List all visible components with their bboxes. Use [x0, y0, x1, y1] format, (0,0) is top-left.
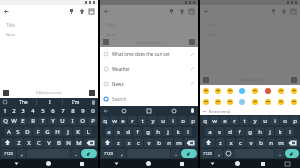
button[interactable] [261, 96, 274, 107]
button[interactable] [200, 96, 212, 107]
button[interactable]: r [230, 116, 239, 125]
button[interactable]: s [215, 127, 224, 136]
button[interactable]: f [235, 127, 244, 136]
button[interactable]: W [10, 117, 18, 125]
button[interactable]: j [265, 127, 274, 136]
button[interactable]: t [240, 116, 249, 125]
button[interactable]: e [220, 116, 229, 125]
button[interactable]: ?123 [1, 149, 16, 158]
button[interactable]: i [270, 116, 279, 125]
button[interactable]: P [88, 117, 97, 125]
button[interactable]: z [216, 138, 225, 147]
button[interactable]: Home [32, 159, 65, 168]
button[interactable] [224, 85, 236, 96]
button[interactable]: Backspace [84, 138, 97, 147]
button[interactable]: t [138, 116, 147, 125]
button[interactable]: What time does the sun set [100, 47, 198, 61]
button[interactable] [261, 85, 274, 96]
button[interactable]: Back [103, 8, 110, 15]
button[interactable]: Enter [81, 149, 97, 158]
button[interactable]: w [110, 116, 118, 125]
button[interactable]: Y [48, 117, 57, 125]
button[interactable]: 4 [28, 107, 37, 115]
button[interactable]: I'm [63, 98, 88, 106]
button[interactable] [236, 85, 248, 96]
button[interactable]: L [83, 127, 92, 136]
button[interactable]: Enter [285, 149, 299, 158]
button[interactable]: Emoji [112, 106, 136, 115]
button[interactable]: Recents [165, 159, 198, 168]
button[interactable] [248, 96, 261, 107]
button[interactable]: Backspace [286, 138, 299, 147]
button[interactable]: m [276, 138, 285, 147]
button[interactable]: k [173, 127, 182, 136]
button[interactable]: i [168, 116, 177, 125]
button[interactable]: l [285, 127, 294, 136]
button[interactable]: Archive [188, 8, 195, 15]
button[interactable]: Pin [168, 8, 175, 15]
button[interactable]: The [10, 98, 36, 106]
button[interactable] [287, 85, 300, 96]
button[interactable]: Reminder [78, 8, 85, 15]
button[interactable]: n [266, 138, 275, 147]
button[interactable]: 3 [19, 107, 27, 115]
button[interactable]: p [290, 116, 299, 125]
button[interactable]: q [201, 116, 209, 125]
button[interactable]: w [210, 116, 219, 125]
button[interactable]: Back [200, 159, 225, 168]
button[interactable]: Shift [1, 138, 13, 147]
button[interactable]: Back [3, 8, 10, 15]
button[interactable]: d [123, 127, 132, 136]
button[interactable]: Recents [250, 159, 275, 168]
button[interactable]: Shift [201, 138, 215, 147]
button[interactable]: j [163, 127, 172, 136]
button[interactable]: N [64, 138, 73, 147]
button[interactable]: 8 [68, 107, 77, 115]
button[interactable]: b [256, 138, 265, 147]
button[interactable]: Shift [101, 138, 113, 147]
button[interactable]: e [119, 116, 127, 125]
button[interactable]: Archive [88, 8, 95, 15]
button[interactable]: p [188, 116, 197, 125]
button[interactable]: a [105, 127, 113, 136]
button[interactable]: Q [1, 117, 9, 125]
button[interactable]: Backspace [184, 138, 197, 147]
button[interactable] [212, 96, 224, 107]
button[interactable]: a [205, 127, 214, 136]
button[interactable]: g [245, 127, 254, 136]
button[interactable]: Home [225, 159, 250, 168]
button[interactable]: Voice input [186, 106, 198, 115]
button[interactable]: u [260, 116, 269, 125]
button[interactable]: q [101, 116, 109, 125]
button[interactable] [248, 85, 261, 96]
button[interactable] [274, 85, 287, 96]
button[interactable]: v [246, 138, 255, 147]
button[interactable] [200, 85, 212, 96]
button[interactable]: m [174, 138, 183, 147]
button[interactable]: r [128, 116, 137, 125]
button[interactable]: K [73, 127, 82, 136]
button[interactable]: 2 [10, 107, 18, 115]
button[interactable]: Back [100, 106, 112, 115]
button[interactable]: f [133, 127, 142, 136]
button[interactable]: Pin [68, 8, 75, 15]
button[interactable]: 1 [1, 107, 9, 115]
button[interactable]: k [275, 127, 284, 136]
button[interactable]: Back [100, 159, 132, 168]
button[interactable]: Weather [100, 61, 198, 76]
button[interactable]: 6 [48, 107, 57, 115]
button[interactable]: v [144, 138, 153, 147]
button[interactable]: , [214, 149, 223, 158]
button[interactable]: Keyboard [275, 159, 300, 168]
button[interactable]: T [38, 117, 47, 125]
button[interactable]: Reminder [178, 8, 185, 15]
button[interactable]: U [58, 117, 67, 125]
button[interactable]: C [34, 138, 43, 147]
button[interactable]: l [183, 127, 192, 136]
button[interactable] [212, 85, 224, 96]
button[interactable]: y [148, 116, 157, 125]
